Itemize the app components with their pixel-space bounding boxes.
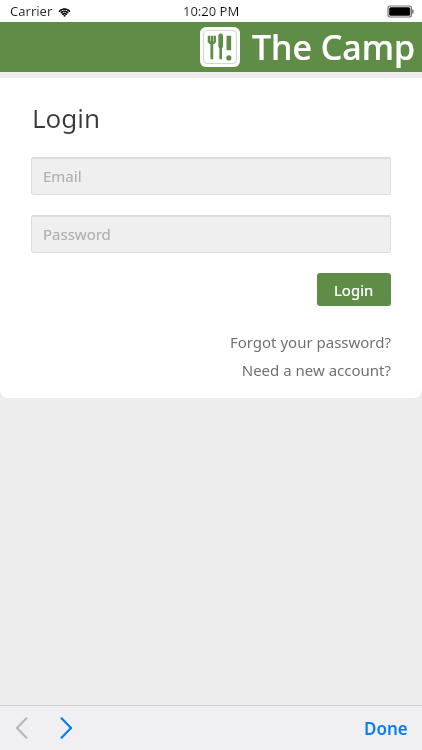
- staticText: Password: [43, 224, 111, 244]
- button[interactable]: Forgot your password?: [229, 330, 391, 354]
- staticText: Done: [364, 717, 408, 740]
- button[interactable]: Need a new account?: [241, 358, 391, 382]
- staticText: Login: [32, 100, 101, 135]
- button[interactable]: Done: [350, 709, 422, 748]
- button[interactable]: Password: [31, 215, 391, 253]
- staticText: The Camp: [252, 24, 416, 70]
- staticText: Email: [43, 166, 82, 186]
- button[interactable]: Next field: [44, 706, 88, 750]
- button[interactable]: Login: [317, 273, 391, 306]
- staticText: Forgot your password?: [229, 332, 391, 352]
- button[interactable]: Previous field: [0, 706, 44, 750]
- staticText: Carrier: [10, 2, 53, 20]
- staticText: 10:20 PM: [183, 2, 240, 20]
- staticText: Need a new account?: [241, 360, 391, 380]
- button[interactable]: The Campus Dish home: [200, 24, 416, 70]
- staticText: Login: [334, 280, 374, 300]
- button[interactable]: Email: [31, 157, 391, 195]
